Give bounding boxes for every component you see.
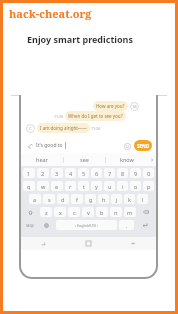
staticText: j	[116, 196, 118, 203]
staticText: 0	[147, 170, 151, 177]
staticText: C	[29, 126, 32, 131]
button[interactable]: know	[106, 153, 147, 166]
staticText: Enjoy smart predictions	[27, 33, 133, 45]
button[interactable]: Contact avatar	[26, 124, 35, 133]
button[interactable]: Recents	[21, 237, 66, 250]
button[interactable]: SEND	[134, 140, 152, 151]
staticText: 1	[27, 170, 31, 177]
button[interactable]: w	[37, 181, 49, 191]
button[interactable]: 7	[104, 168, 115, 178]
button[interactable]: How are you?	[93, 101, 128, 111]
staticText: u	[108, 183, 112, 190]
button[interactable]: Symbols	[23, 220, 37, 230]
staticText: 11:34	[91, 126, 100, 131]
staticText: x	[59, 209, 62, 216]
button[interactable]: v	[82, 207, 94, 217]
button[interactable]: p	[143, 181, 154, 191]
button[interactable]: Contact avatar	[130, 102, 139, 111]
button[interactable]: I am doing alright——	[37, 123, 90, 133]
staticText: How are you?	[96, 103, 125, 109]
button[interactable]: z	[40, 207, 52, 217]
button[interactable]: d	[57, 194, 69, 204]
button[interactable]: see	[64, 153, 105, 166]
staticText: d	[61, 196, 65, 203]
staticText: q	[27, 183, 31, 190]
staticText: see	[80, 156, 89, 163]
button[interactable]: hear	[21, 153, 63, 166]
button[interactable]: ‹ English(US) ›	[56, 220, 117, 230]
button[interactable]: q	[23, 181, 35, 191]
button[interactable]: Attach	[25, 141, 34, 150]
button[interactable]: Enter	[136, 220, 154, 230]
staticText: 4	[69, 170, 73, 177]
staticText: z	[45, 209, 48, 216]
button[interactable]: 9	[130, 168, 141, 178]
staticText: m	[127, 209, 133, 216]
button[interactable]: 4	[65, 168, 76, 178]
button[interactable]: Back	[111, 237, 156, 250]
button[interactable]: u	[104, 181, 115, 191]
button[interactable]: b	[96, 207, 108, 217]
button[interactable]: o	[130, 181, 141, 191]
button[interactable]: Shift	[23, 207, 38, 217]
staticText: M	[133, 104, 137, 109]
staticText: It's good to	[36, 142, 63, 149]
staticText: c	[73, 209, 76, 216]
staticText: 2	[41, 170, 45, 177]
staticText: 11:33	[54, 114, 63, 119]
staticText: l	[142, 196, 144, 203]
button[interactable]: 2	[37, 168, 49, 178]
button[interactable]: l	[137, 194, 148, 204]
button[interactable]: 1	[23, 168, 35, 178]
button[interactable]: x	[54, 207, 66, 217]
button[interactable]: s	[43, 194, 55, 204]
button[interactable]: g	[85, 194, 96, 204]
staticText: !#☺	[26, 223, 34, 228]
staticText: 7	[108, 170, 112, 177]
staticText: know	[120, 156, 134, 163]
staticText: k	[128, 196, 131, 203]
staticText: o	[134, 183, 138, 190]
button[interactable]: a	[29, 194, 41, 204]
button[interactable]: y	[91, 181, 102, 191]
button[interactable]: r	[65, 181, 76, 191]
button[interactable]: When do I get to see you?	[65, 111, 126, 121]
button[interactable]: n	[110, 207, 122, 217]
staticText: When do I get to see you?	[68, 113, 123, 119]
staticText: h	[102, 196, 106, 203]
staticText: p	[147, 183, 151, 190]
button[interactable]: 8	[117, 168, 128, 178]
staticText: i	[122, 183, 124, 190]
button[interactable]: h	[98, 194, 109, 204]
button[interactable]: 0	[143, 168, 154, 178]
button[interactable]: i	[117, 181, 128, 191]
button[interactable]: e	[51, 181, 63, 191]
button[interactable]: m	[124, 207, 136, 217]
button[interactable]: .	[119, 220, 134, 230]
button[interactable]: Backspace	[138, 207, 154, 217]
button[interactable]: j	[111, 194, 122, 204]
staticText: hear	[36, 156, 48, 163]
button[interactable]: Emoji	[122, 141, 132, 151]
staticText: I am doing alright——	[40, 125, 87, 131]
staticText: b	[100, 209, 104, 216]
staticText: w	[41, 183, 46, 190]
staticText: t	[83, 183, 85, 190]
staticText: 9	[134, 170, 138, 177]
staticText: ‹ English(US) ›	[75, 223, 99, 228]
staticText: hack-cheat.org	[9, 6, 92, 21]
button[interactable]: f	[71, 194, 83, 204]
button[interactable]: t	[78, 181, 89, 191]
staticText: 6	[95, 170, 99, 177]
button[interactable]: 5	[78, 168, 89, 178]
staticText: n	[114, 209, 118, 216]
staticText: SEND	[137, 143, 149, 149]
button[interactable]: Home	[66, 237, 111, 250]
button[interactable]: 6	[91, 168, 102, 178]
button[interactable]: 3	[51, 168, 63, 178]
button[interactable]: k	[124, 194, 135, 204]
button[interactable]: Settings	[39, 220, 54, 230]
button[interactable]: c	[68, 207, 80, 217]
staticText: 3	[55, 170, 59, 177]
button[interactable]: More predictions	[147, 153, 156, 166]
